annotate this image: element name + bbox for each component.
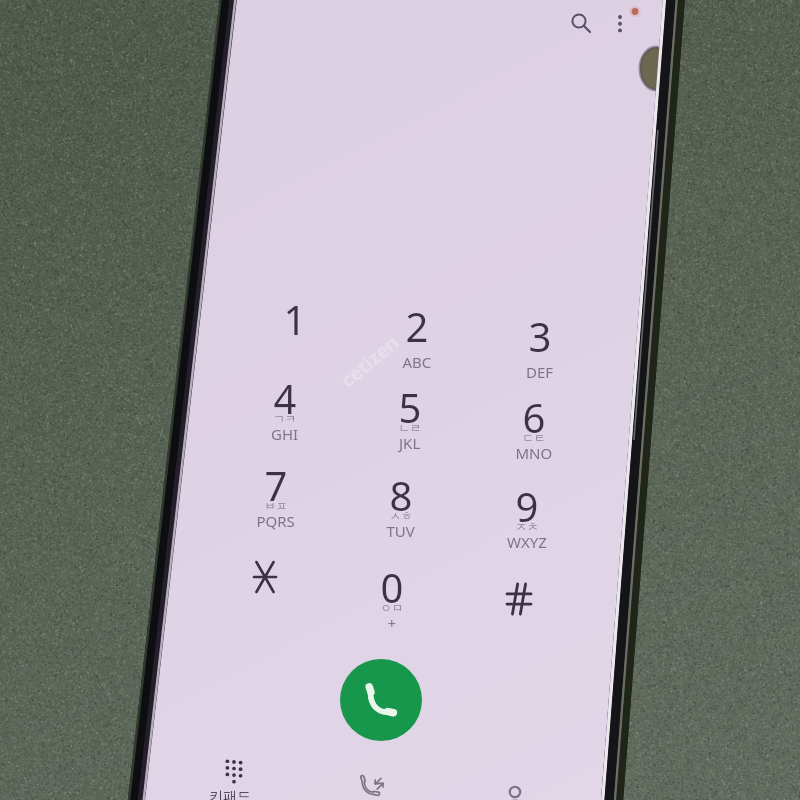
button[interactable]: Keypad <box>186 745 282 800</box>
button[interactable]: Dial 7 <box>224 448 328 524</box>
button[interactable]: Dial 6 <box>482 380 586 456</box>
button[interactable]: Dial 0 <box>340 550 444 626</box>
button[interactable]: Dial 3 <box>488 299 592 375</box>
button[interactable]: Dial 5 <box>358 370 462 446</box>
button[interactable]: Dial 9 <box>475 469 579 545</box>
button[interactable]: Call <box>340 659 422 741</box>
button[interactable]: Dial 1 <box>243 282 347 358</box>
button[interactable]: Dial # <box>467 561 571 637</box>
button[interactable]: Dial 8 <box>349 458 453 534</box>
button[interactable]: Dial * <box>213 539 317 615</box>
button[interactable]: More options <box>600 0 644 48</box>
button[interactable]: Recents <box>328 750 424 800</box>
button[interactable]: Dial 4 <box>233 361 337 437</box>
button[interactable]: Search <box>555 0 603 48</box>
button[interactable]: Dial 2 <box>365 289 469 365</box>
button[interactable]: Contacts <box>468 756 564 800</box>
